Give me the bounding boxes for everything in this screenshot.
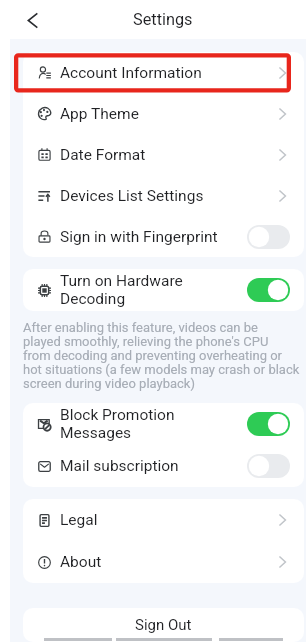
button[interactable]: Date Format bbox=[23, 134, 304, 175]
button[interactable]: Devices List Settings bbox=[23, 175, 304, 216]
staticText: About bbox=[60, 553, 278, 571]
staticText: Mail subscription bbox=[60, 457, 247, 475]
staticText: Sign in with Fingerprint bbox=[60, 228, 247, 246]
staticText: Turn on Hardware Decoding bbox=[60, 272, 247, 308]
staticText: After enabling this feature, videos can … bbox=[23, 320, 300, 391]
button[interactable]: Legal bbox=[23, 499, 304, 541]
staticText: Devices List Settings bbox=[60, 187, 278, 205]
staticText: App Theme bbox=[60, 105, 278, 123]
staticText: Block Promotion Messages bbox=[60, 406, 247, 442]
staticText: Sign Out bbox=[135, 616, 192, 634]
button[interactable]: Block Promotion Messages bbox=[23, 403, 304, 445]
button[interactable]: App Theme bbox=[23, 93, 304, 134]
button[interactable]: About bbox=[23, 541, 304, 583]
button[interactable]: Account Information bbox=[23, 52, 304, 93]
staticText: Legal bbox=[60, 511, 278, 529]
staticText: Account Information bbox=[60, 64, 278, 82]
button[interactable]: Mail subscription bbox=[23, 445, 304, 487]
button[interactable]: Sign in with Fingerprint bbox=[23, 216, 304, 257]
button[interactable]: Turn on Hardware Decoding bbox=[23, 269, 304, 311]
staticText: Date Format bbox=[60, 146, 278, 164]
button[interactable]: Back bbox=[19, 7, 45, 33]
staticText: Settings bbox=[133, 10, 193, 29]
button[interactable]: Sign Out bbox=[23, 608, 304, 642]
